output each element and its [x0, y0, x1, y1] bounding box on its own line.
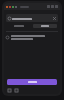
button[interactable]: Close: [52, 16, 56, 20]
button[interactable]: Close: [6, 14, 58, 22]
button[interactable]: Emoji: [14, 88, 19, 93]
button[interactable]: [6, 34, 58, 41]
button[interactable]: Keyboard: [7, 88, 12, 93]
button[interactable]: [7, 79, 57, 85]
button[interactable]: [6, 23, 32, 29]
button[interactable]: [33, 24, 57, 28]
